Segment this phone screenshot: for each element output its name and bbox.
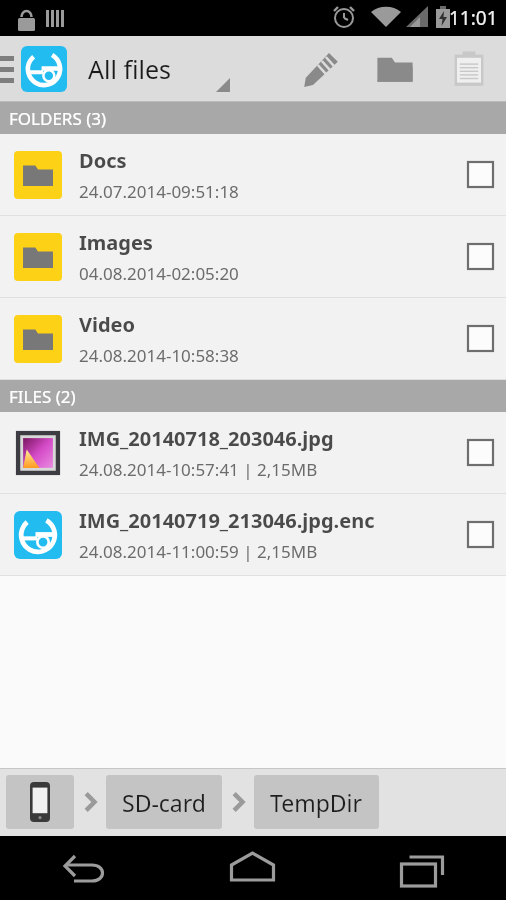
- button[interactable]: TempDir: [254, 775, 379, 829]
- button[interactable]: Back: [0, 836, 168, 900]
- staticText: TempDir: [270, 787, 363, 818]
- staticText: SD-card: [122, 787, 206, 818]
- button[interactable]: Open navigation drawer: [0, 36, 72, 102]
- staticText: FOLDERS (3): [9, 107, 107, 130]
- staticText: IMG_20140718_203046.jpg: [79, 425, 334, 452]
- button[interactable]: Images: [0, 216, 506, 297]
- button[interactable]: IMG_20140719_213046.jpg.enc: [0, 494, 506, 575]
- button[interactable]: Select IMG_20140719_213046.jpg.enc: [454, 494, 506, 575]
- button[interactable]: Clipboard: [432, 36, 506, 102]
- button[interactable]: Edit: [284, 36, 358, 102]
- button[interactable]: Video: [0, 298, 506, 379]
- staticText: FILES (2): [9, 385, 76, 408]
- button[interactable]: Select Video: [454, 298, 506, 379]
- button[interactable]: IMG_20140718_203046.jpg: [0, 412, 506, 493]
- staticText: 24.07.2014-09:51:18: [79, 180, 239, 203]
- button[interactable]: Home: [168, 836, 337, 900]
- staticText: Images: [79, 229, 153, 256]
- button[interactable]: Select IMG_20140718_203046.jpg: [454, 412, 506, 493]
- button[interactable]: Recent apps: [337, 836, 506, 900]
- staticText: Video: [79, 311, 136, 338]
- button[interactable]: Docs: [0, 134, 506, 215]
- button[interactable]: Select Docs: [454, 134, 506, 215]
- button[interactable]: All files: [82, 36, 284, 102]
- button[interactable]: SD-card: [106, 775, 222, 829]
- staticText: 04.08.2014-02:05:20: [79, 262, 239, 285]
- staticText: 24.08.2014-11:00:59 | 2,15MB: [79, 540, 318, 563]
- staticText: Docs: [79, 147, 127, 174]
- staticText: All files: [88, 52, 171, 86]
- staticText: IMG_20140719_213046.jpg.enc: [79, 507, 375, 534]
- button[interactable]: Device root: [6, 775, 74, 829]
- button[interactable]: Select Images: [454, 216, 506, 297]
- staticText: 24.08.2014-10:58:38: [79, 344, 239, 367]
- staticText: 11:01: [449, 5, 498, 31]
- button[interactable]: Folder: [358, 36, 432, 102]
- staticText: 24.08.2014-10:57:41 | 2,15MB: [79, 458, 318, 481]
